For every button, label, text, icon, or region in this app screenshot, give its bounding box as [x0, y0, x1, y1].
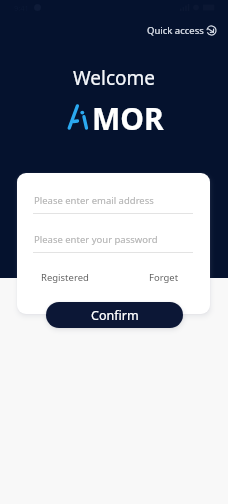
- staticText: Quick access: [147, 24, 204, 37]
- staticText: Welcome: [73, 65, 156, 91]
- button[interactable]: Registered: [33, 265, 97, 290]
- button[interactable]: Quick access: [147, 24, 217, 37]
- staticText: Confirm: [91, 307, 139, 324]
- button[interactable]: Please enter email address: [17, 189, 210, 215]
- staticText: Forget: [149, 271, 179, 284]
- staticText: Registered: [41, 271, 89, 284]
- staticText: Please enter your password: [34, 233, 158, 246]
- staticText: Please enter email address: [34, 194, 154, 207]
- button[interactable]: Confirm: [46, 302, 183, 328]
- button[interactable]: Forget: [141, 265, 187, 290]
- staticText: MOR: [92, 98, 164, 139]
- button[interactable]: Please enter your password: [17, 228, 210, 254]
